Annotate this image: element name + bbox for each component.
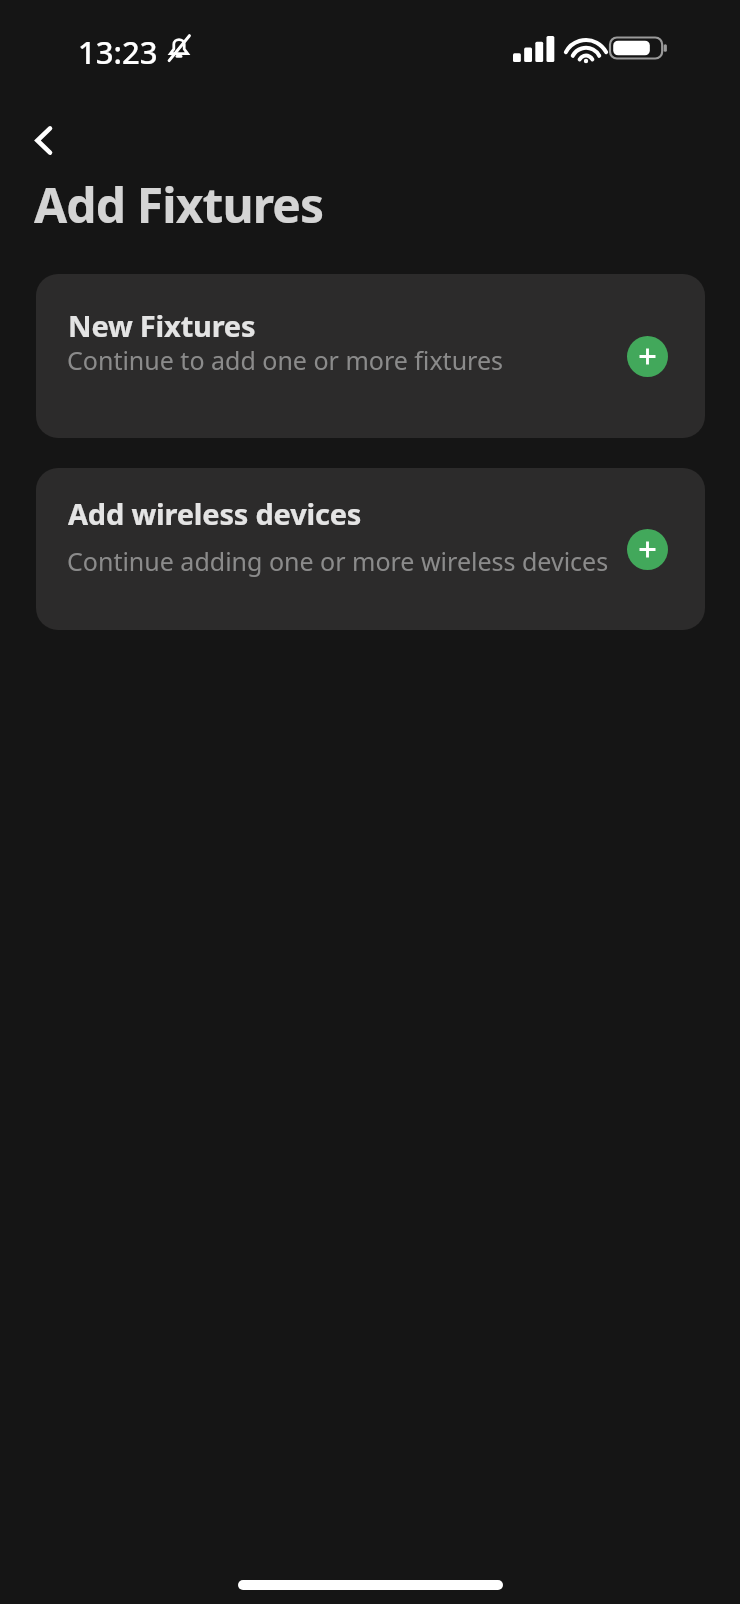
staticText: New Fixtures (68, 306, 256, 345)
staticText: Add Fixtures (34, 172, 324, 237)
button[interactable]: New Fixtures (36, 274, 705, 438)
staticText: Continue to add one or more fixtures (67, 343, 503, 377)
staticText: Continue adding one or more wireless dev… (67, 544, 609, 578)
staticText: 13:23 (78, 31, 158, 73)
button[interactable]: Back (20, 117, 66, 163)
button[interactable]: Add (627, 336, 668, 377)
button[interactable]: Add wireless devices (36, 468, 705, 630)
staticText: Add wireless devices (68, 494, 362, 533)
button[interactable]: Add (627, 529, 668, 570)
